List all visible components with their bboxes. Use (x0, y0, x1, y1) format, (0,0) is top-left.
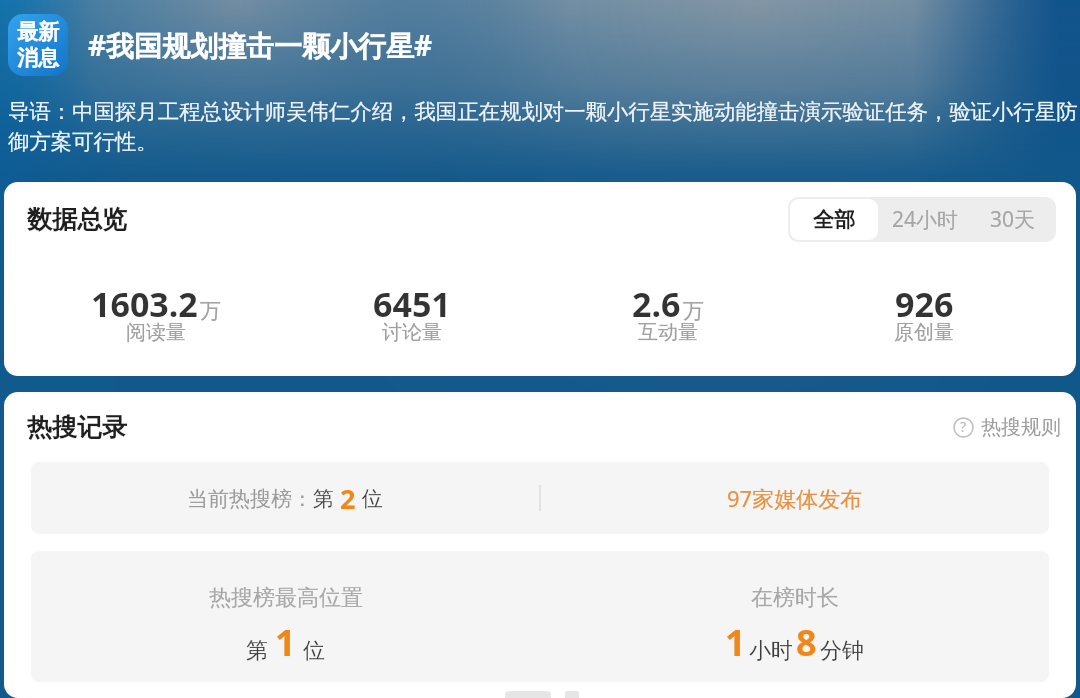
staticText: 第 (313, 486, 334, 512)
staticText: 导语：中国探月工程总设计师吴伟仁介绍，我国正在规划对一颗小行星实施动能撞击演示验… (8, 98, 1079, 156)
button[interactable]: ? (953, 415, 1061, 440)
staticText: 热搜记录 (27, 412, 127, 443)
staticText: 当前热搜榜： (187, 486, 313, 512)
staticText: 互动量 (638, 320, 698, 345)
staticText: 热搜规则 (981, 415, 1061, 440)
staticText: 位 (362, 486, 383, 512)
staticText: 万 (683, 298, 704, 324)
staticText: 926 (895, 281, 954, 327)
staticText: 1 (725, 618, 746, 667)
staticText: 阅读量 (126, 320, 186, 345)
staticText: 第 (246, 637, 268, 665)
button[interactable]: 全部 (790, 199, 878, 240)
staticText: 最新 (17, 19, 59, 45)
button[interactable]: 926 (796, 281, 1052, 352)
staticText: 数据总览 (27, 204, 127, 235)
staticText: 全部 (813, 207, 855, 233)
button[interactable]: #我国规划撞击一颗小行星# (88, 26, 433, 64)
button[interactable]: 2.6 (540, 281, 796, 352)
staticText: 在榜时长 (751, 584, 839, 612)
staticText: 97家媒体发布 (727, 483, 863, 513)
staticText: 2 (340, 480, 356, 517)
staticText: 小时 (749, 637, 793, 665)
staticText: 位 (303, 637, 325, 665)
staticText: 2.6 (632, 281, 681, 327)
staticText: 1603.2 (91, 281, 198, 327)
button[interactable]: 当前热搜榜： (31, 462, 1049, 534)
staticText: 讨论量 (382, 320, 442, 345)
button[interactable]: 最新消息 (8, 14, 68, 76)
staticText: 热搜榜最高位置 (209, 584, 363, 612)
staticText: 原创量 (894, 320, 954, 345)
button[interactable]: 6451 (284, 281, 540, 352)
staticText: 消息 (17, 45, 59, 71)
staticText: ? (960, 417, 967, 436)
button[interactable]: 1603.2 (28, 281, 284, 352)
staticText: 6451 (373, 281, 451, 327)
button[interactable]: 热搜榜最高位置 (31, 551, 1049, 682)
staticText: 万 (200, 298, 221, 324)
staticText: 1 (275, 618, 296, 667)
staticText: 24小时 (892, 205, 959, 234)
staticText: 8 (796, 618, 817, 667)
staticText: 分钟 (820, 637, 864, 665)
button[interactable]: 30天 (972, 199, 1054, 240)
staticText: #我国规划撞击一颗小行星# (88, 26, 433, 64)
button[interactable]: 24小时 (878, 199, 972, 240)
staticText: 30天 (990, 205, 1036, 234)
